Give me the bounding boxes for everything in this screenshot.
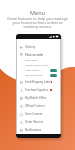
button[interactable]: Place an order — [17, 51, 60, 58]
button[interactable]: Order history — [17, 68, 60, 73]
staticText: Menu — [30, 9, 45, 16]
button[interactable]: Send Shipping Label — [17, 78, 60, 86]
button[interactable]: Order Returns — [17, 118, 60, 126]
button[interactable]: Official Content — [17, 102, 60, 110]
button[interactable]: Delivery — [17, 43, 60, 51]
staticText: Order history — [25, 69, 40, 72]
staticText: My Mobile Office — [25, 96, 47, 100]
button[interactable]: Manage returns — [17, 73, 60, 78]
button[interactable]: Store Content — [17, 110, 60, 118]
staticText: Send Shipping Label — [25, 80, 51, 84]
button[interactable]: My Mobile Office — [17, 94, 60, 102]
button[interactable]: Track order — [17, 58, 60, 63]
staticText: Notifications — [25, 128, 41, 132]
button[interactable]: Delivery Status Order — [17, 63, 60, 68]
staticText: Place an order — [25, 53, 44, 57]
button[interactable]: Notifications — [17, 126, 60, 134]
staticText: Official Content — [25, 104, 45, 108]
staticText: Track order — [25, 59, 38, 62]
staticText: Delivery — [25, 45, 36, 49]
staticText: Purchase Supplies — [25, 88, 48, 92]
staticText: Store Content — [25, 112, 43, 116]
staticText: Order Returns — [25, 120, 44, 124]
button[interactable]: Purchase Supplies — [17, 86, 60, 94]
staticText: Great features to help you manage your b… — [7, 16, 68, 29]
staticText: Manage returns — [25, 74, 43, 77]
staticText: Delivery Status Order — [25, 64, 49, 67]
